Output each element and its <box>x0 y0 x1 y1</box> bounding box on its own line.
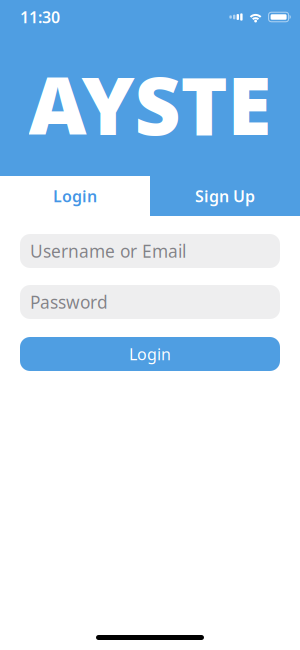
button[interactable]: Sign Up <box>150 176 300 216</box>
staticText: Sign Up <box>195 185 255 207</box>
staticText: Login <box>129 343 171 365</box>
staticText: Password <box>30 290 108 313</box>
staticText: AYSTE <box>28 51 271 157</box>
button[interactable]: Username or Email <box>20 234 280 268</box>
button[interactable]: Login <box>20 337 280 371</box>
staticText: 11:30 <box>20 6 60 28</box>
staticText: Username or Email <box>30 239 186 262</box>
button[interactable]: Password <box>20 285 280 319</box>
staticText: Login <box>53 185 97 207</box>
button[interactable]: Login <box>0 176 150 216</box>
